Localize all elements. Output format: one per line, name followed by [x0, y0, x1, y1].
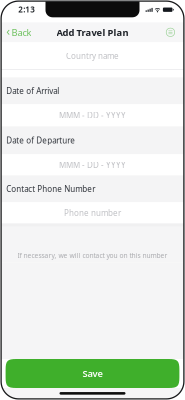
staticText: 2:13: [18, 4, 35, 15]
staticText: Contact Phone Number: [6, 183, 95, 194]
button[interactable]: Back: [1, 22, 36, 42]
button[interactable]: Menu: [166, 22, 184, 42]
button[interactable]: Save: [1, 359, 184, 388]
staticText: Country name: [66, 50, 119, 61]
staticText: Back: [11, 26, 31, 38]
staticText: Add Travel Plan: [56, 26, 128, 38]
button[interactable]: MMM - DD - YYYY: [1, 104, 184, 126]
staticText: Date of Departure: [6, 135, 75, 146]
staticText: If necessary, we will contact you on thi…: [17, 251, 167, 260]
staticText: Date of Arrival: [6, 85, 59, 96]
button[interactable]: MMM - DD - YYYY: [1, 154, 184, 175]
button[interactable]: Phone number: [1, 202, 184, 223]
button[interactable]: Country name: [1, 42, 184, 69]
staticText: MMM - DD - YYYY: [59, 159, 126, 170]
staticText: MMM - DD - YYYY: [59, 110, 126, 121]
staticText: Save: [82, 367, 102, 380]
staticText: Phone number: [64, 207, 121, 218]
